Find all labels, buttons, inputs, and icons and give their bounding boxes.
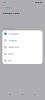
button[interactable]: DNS	[2, 57, 42, 64]
staticText: Network Interface	[3, 28, 15, 30]
button[interactable]: Overview	[8, 92, 12, 97]
staticText: Advanced	[3, 6, 11, 9]
staticText: DNS	[8, 59, 11, 62]
staticText: Router	[8, 53, 14, 55]
staticText: IP Address	[8, 39, 17, 42]
button[interactable]: Subnet Mask	[2, 44, 42, 50]
staticText: 9:41	[3, 2, 6, 3]
staticText: Subnet Mask	[8, 46, 19, 48]
button[interactable]: Wi-Fi Address	[2, 30, 42, 37]
button[interactable]: Settings	[33, 92, 37, 97]
button[interactable]: ‹	[0, 5, 13, 10]
staticText: ‹	[2, 6, 3, 9]
button[interactable]: IP Address	[2, 37, 42, 44]
staticText: Wi-Fi Address	[8, 33, 19, 35]
button[interactable]: Router	[2, 51, 42, 57]
staticText: Network Details	[2, 12, 20, 14]
button[interactable]: Devices	[20, 92, 24, 97]
